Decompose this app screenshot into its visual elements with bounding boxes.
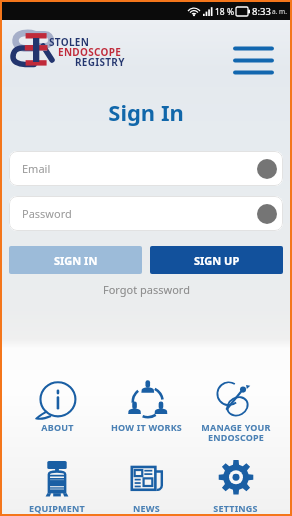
button[interactable]: Password [9, 196, 283, 231]
staticText: SIGN IN [54, 253, 98, 268]
staticText: Email [22, 161, 51, 176]
staticText: MANAGE YOUR ENDOSCOPE [201, 421, 271, 444]
staticText: REGISTRY [75, 55, 125, 69]
staticText: 8:33 [252, 5, 271, 18]
staticText: ENDOSCOPE [58, 45, 122, 59]
button[interactable]: SIGN IN [9, 246, 142, 274]
staticText: HOW IT WORKS [111, 421, 182, 433]
button[interactable]: Settings [191, 459, 280, 514]
staticText: a. m. [272, 7, 287, 16]
staticText: SIGN UP [194, 253, 240, 268]
staticText: Forgot password [103, 282, 190, 297]
button[interactable]: How it works [102, 378, 191, 433]
staticText: NEWS [133, 502, 160, 514]
staticText: SETTINGS [213, 502, 258, 514]
staticText: EQUIPMENT [29, 502, 85, 514]
staticText: ABOUT [41, 421, 74, 433]
button[interactable]: About [12, 378, 102, 433]
staticText: Password [22, 206, 72, 221]
button[interactable]: Forgot password [97, 279, 196, 300]
button[interactable]: Email [9, 151, 283, 186]
button[interactable]: Menu [228, 43, 279, 79]
staticText: 18 % [215, 6, 234, 18]
button[interactable]: SIGN UP [150, 246, 283, 274]
staticText: Sign In [2, 97, 290, 127]
button[interactable]: Equipment [12, 459, 102, 514]
button[interactable]: Manage your endoscope [191, 378, 280, 444]
staticText: STOLEN [49, 35, 90, 49]
button[interactable]: News [102, 459, 191, 514]
